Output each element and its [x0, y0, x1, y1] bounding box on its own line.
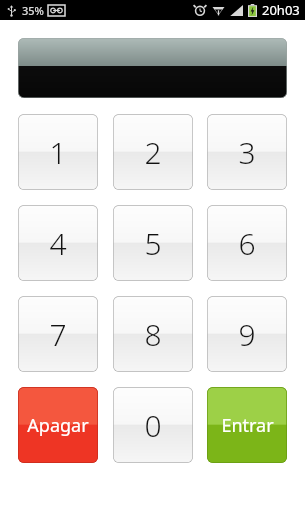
staticText: Apagar: [27, 413, 89, 438]
button[interactable]: 6: [207, 205, 287, 281]
button[interactable]: 3: [207, 114, 287, 190]
staticText: 9: [238, 314, 256, 355]
button[interactable]: 5: [113, 205, 193, 281]
staticText: 0: [144, 405, 162, 446]
button[interactable]: 0: [113, 387, 193, 463]
button[interactable]: 9: [207, 296, 287, 372]
staticText: 6: [238, 223, 256, 264]
staticText: Entrar: [221, 413, 274, 438]
button[interactable]: Apagar: [18, 387, 98, 463]
button[interactable]: [18, 38, 287, 98]
button[interactable]: Entrar: [207, 387, 287, 463]
staticText: 1: [49, 132, 67, 173]
staticText: 8: [144, 314, 162, 355]
button[interactable]: 4: [18, 205, 98, 281]
button[interactable]: 7: [18, 296, 98, 372]
staticText: 2: [144, 132, 162, 173]
button[interactable]: 2: [113, 114, 193, 190]
button[interactable]: 8: [113, 296, 193, 372]
staticText: 5: [144, 223, 162, 264]
staticText: 20h03: [262, 1, 300, 19]
staticText: 3: [238, 132, 256, 173]
button[interactable]: 1: [18, 114, 98, 190]
staticText: 4: [49, 223, 67, 264]
staticText: 35%: [22, 3, 44, 18]
staticText: 7: [49, 314, 67, 355]
